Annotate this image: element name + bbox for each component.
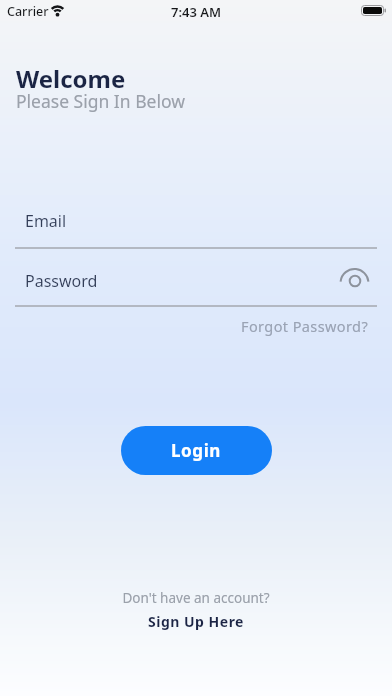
button[interactable] [340, 267, 370, 291]
button[interactable]: Forgot Password? [233, 312, 377, 340]
staticText: Please Sign In Below [16, 89, 185, 113]
button[interactable]: Sign Up Here [138, 608, 254, 635]
staticText: Password [25, 270, 98, 292]
staticText: Email [25, 210, 67, 232]
staticText: Login [171, 439, 222, 462]
staticText: Welcome [16, 62, 126, 95]
staticText: Carrier [7, 3, 49, 20]
button[interactable]: Password [15, 264, 377, 305]
button[interactable]: Email [15, 205, 377, 248]
button[interactable]: Login [121, 426, 272, 475]
staticText: 7:43 AM [0, 3, 392, 21]
staticText: Sign Up Here [148, 612, 244, 631]
staticText: Don't have an account? [0, 589, 392, 607]
staticText: Forgot Password? [241, 316, 369, 336]
